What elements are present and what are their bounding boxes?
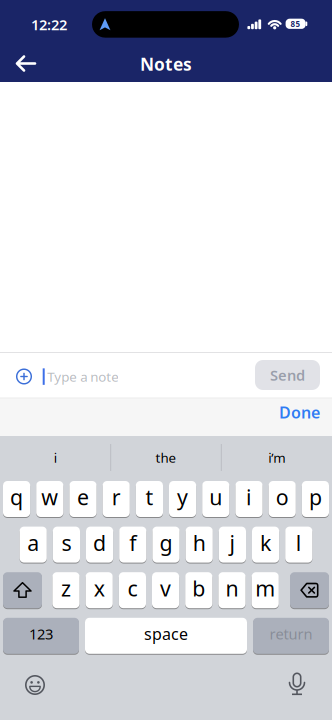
button[interactable]: c [119, 572, 146, 609]
staticText: space [144, 623, 188, 644]
button[interactable]: t [136, 480, 163, 517]
button[interactable]: space [85, 617, 247, 654]
button[interactable]: 123 [3, 617, 79, 654]
button[interactable]: a [20, 526, 47, 563]
staticText: i’m [268, 449, 285, 466]
button[interactable] [290, 572, 329, 609]
button[interactable]: d [86, 526, 113, 563]
button[interactable]: v [152, 572, 179, 609]
staticText: g [159, 528, 172, 557]
staticText: t [145, 483, 153, 511]
staticText: 85 [291, 18, 301, 29]
staticText: a [27, 528, 39, 557]
staticText: Send [270, 365, 305, 385]
button[interactable] [288, 671, 306, 697]
button[interactable]: s [53, 526, 80, 563]
button[interactable] [11, 48, 41, 78]
staticText: r [112, 483, 121, 511]
staticText: o [276, 483, 289, 511]
button[interactable]: i’m [227, 440, 327, 474]
button[interactable]: z [52, 572, 80, 609]
staticText: 123 [29, 624, 53, 644]
button[interactable] [3, 572, 42, 609]
staticText: b [192, 574, 205, 602]
button[interactable]: r [103, 480, 130, 517]
staticText: z [61, 574, 71, 602]
button[interactable]: b [185, 572, 212, 609]
button[interactable]: return [253, 617, 329, 654]
button[interactable]: n [218, 572, 246, 609]
staticText: Notes [140, 52, 192, 75]
staticText: c [127, 574, 137, 602]
button[interactable]: f [119, 526, 146, 563]
staticText: h [193, 528, 206, 557]
staticText: m [255, 574, 275, 602]
staticText: l [296, 528, 302, 557]
staticText: n [225, 574, 238, 602]
staticText: the [155, 449, 176, 466]
button[interactable]: x [86, 572, 113, 609]
staticText: s [61, 528, 71, 557]
staticText: return [269, 624, 312, 644]
button[interactable]: Type a note [43, 359, 249, 395]
button[interactable]: w [36, 480, 63, 517]
staticText: u [209, 483, 222, 511]
button[interactable]: p [302, 480, 329, 517]
staticText: f [129, 528, 136, 557]
button[interactable]: l [285, 526, 312, 563]
button[interactable]: y [169, 480, 196, 517]
staticText: q [10, 483, 23, 511]
button[interactable]: o [269, 480, 296, 517]
button[interactable]: Done [269, 397, 329, 427]
staticText: j [229, 528, 235, 557]
staticText: Done [279, 402, 320, 423]
button[interactable]: i [5, 440, 105, 474]
button[interactable]: h [186, 526, 213, 563]
button[interactable]: j [219, 526, 246, 563]
staticText: i [246, 483, 252, 511]
button[interactable]: k [252, 526, 279, 563]
staticText: x [94, 574, 105, 602]
staticText: y [177, 483, 188, 511]
button[interactable]: g [152, 526, 180, 563]
staticText: d [93, 528, 106, 557]
button[interactable]: m [252, 572, 279, 609]
staticText: p [309, 483, 322, 511]
button[interactable]: i [235, 480, 263, 517]
staticText: v [160, 574, 171, 602]
button[interactable]: Send [255, 360, 320, 390]
staticText: Type a note [47, 368, 119, 385]
button[interactable]: e [69, 480, 97, 517]
button[interactable] [14, 366, 34, 386]
button[interactable]: q [3, 480, 30, 517]
button[interactable] [23, 673, 47, 697]
button[interactable]: the [116, 440, 216, 474]
button[interactable]: u [202, 480, 229, 517]
staticText: 12:22 [31, 15, 67, 34]
staticText: w [41, 483, 58, 511]
staticText: e [77, 483, 89, 511]
staticText: i [54, 449, 57, 466]
staticText: k [260, 528, 271, 557]
